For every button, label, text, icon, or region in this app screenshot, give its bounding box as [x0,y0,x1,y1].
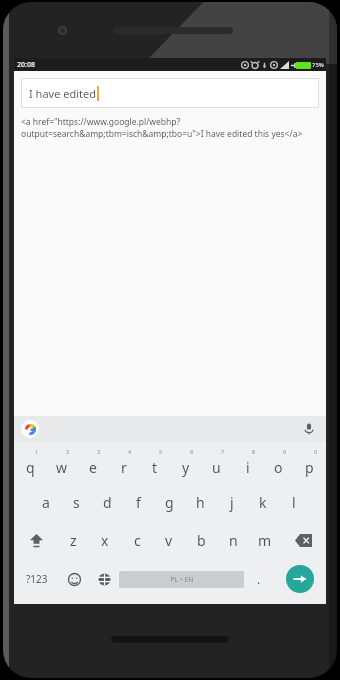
staticText: s [73,493,80,512]
button[interactable]: d [92,483,123,521]
button[interactable]: 6 [170,445,201,483]
staticText: 0 [314,448,318,455]
staticText: k [259,493,267,512]
button[interactable]: m [249,521,281,559]
staticText: g [165,493,174,512]
staticText: n [229,531,238,550]
button[interactable]: j [216,483,247,521]
button[interactable]: z [58,521,89,559]
staticText: 9 [283,448,287,455]
button[interactable]: I have edited [21,78,319,108]
staticText: . [257,571,261,587]
staticText: 3 [97,448,101,455]
staticText: 8 [252,448,256,455]
staticText: 2 [66,448,70,455]
button[interactable]: g [154,483,185,521]
staticText: u [212,458,221,477]
button[interactable]: 1 [15,445,46,483]
button[interactable]: PL • EN [119,571,244,588]
staticText: o [274,458,283,477]
staticText: r [121,458,127,477]
staticText: m [258,531,272,550]
button[interactable]: Change language [89,559,119,599]
staticText: x [101,531,109,550]
button[interactable]: Shift [15,521,58,559]
staticText: <a href="https://www.google.pl/webhp?out… [21,116,319,140]
staticText: i [246,458,250,477]
button[interactable]: b [185,521,217,559]
button[interactable]: ?123 [15,559,59,599]
staticText: 1 [35,448,39,455]
staticText: l [292,493,296,512]
button[interactable]: s [61,483,92,521]
staticText: 20:08 [17,60,35,70]
staticText: PL • EN [170,575,194,585]
staticText: h [196,493,205,512]
staticText: t [152,458,158,477]
button[interactable]: c [121,521,153,559]
staticText: p [305,458,314,477]
button[interactable]: . [244,559,274,599]
staticText: b [197,531,206,550]
button[interactable]: h [185,483,216,521]
staticText: 6 [190,448,194,455]
staticText: z [70,531,77,550]
button[interactable]: Emoji [59,559,89,599]
staticText: e [89,458,97,477]
button[interactable]: 0 [294,445,325,483]
button[interactable]: 9 [263,445,294,483]
staticText: q [26,458,35,477]
staticText: 4 [128,448,132,455]
staticText: 5 [159,448,163,455]
button[interactable]: v [153,521,185,559]
button[interactable]: 3 [77,445,108,483]
staticText: ?123 [26,572,48,586]
button[interactable]: n [217,521,249,559]
button[interactable]: 5 [139,445,170,483]
button[interactable]: 2 [46,445,77,483]
button[interactable]: Voice input [300,420,318,438]
staticText: f [136,493,141,512]
button[interactable]: k [247,483,278,521]
button[interactable]: Google search [21,420,39,438]
staticText: d [103,493,112,512]
staticText: c [134,531,141,550]
button[interactable]: f [123,483,154,521]
button[interactable]: 7 [201,445,232,483]
button[interactable]: x [89,521,121,559]
staticText: j [230,493,234,512]
button[interactable]: Backspace [281,521,325,559]
staticText: 7 [221,448,225,455]
staticText: a [42,493,50,512]
button[interactable]: 8 [232,445,263,483]
button[interactable]: Enter [286,565,314,593]
button[interactable]: 4 [108,445,139,483]
staticText: y [182,458,190,477]
staticText: I have edited [29,86,96,101]
staticText: w [56,458,68,477]
staticText: v [165,531,173,550]
button[interactable]: l [278,483,309,521]
button[interactable]: a [30,483,61,521]
staticText: 75% [312,61,324,69]
